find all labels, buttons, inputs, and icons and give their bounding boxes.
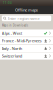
staticText: Enter region name [7,16,39,21]
button[interactable]: France - Midi-Pyrenees [0,37,53,44]
button[interactable]: Alps - West [0,29,53,37]
staticText: Alps - West [2,30,22,36]
button[interactable]: Switzerland [0,52,53,60]
staticText: Switzerland [2,53,22,59]
staticText: France - Midi-Pyrenees [2,38,42,43]
staticText: 11:04 [3,1,12,5]
staticText: Offline maps [15,7,38,13]
button[interactable]: Italy - North [0,45,53,52]
staticText: Maps in Downloads [2,24,28,27]
staticText: Italy - North [2,46,22,51]
